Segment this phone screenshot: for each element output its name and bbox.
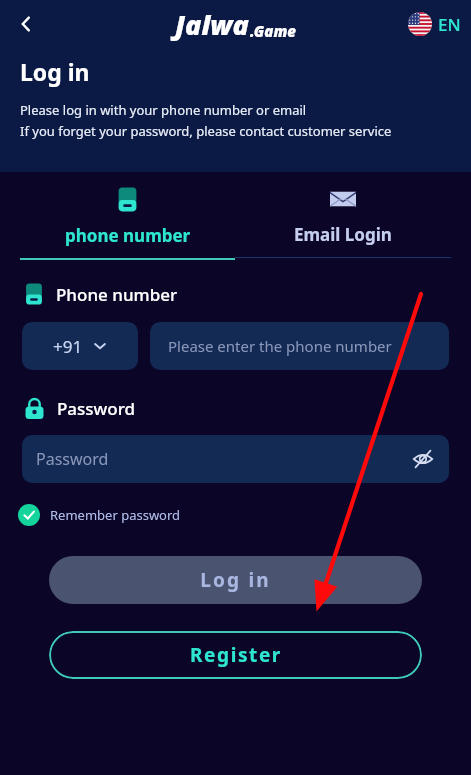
button[interactable]: Back	[6, 4, 46, 44]
staticText: +91	[53, 335, 83, 358]
button[interactable]: Password	[22, 435, 449, 483]
staticText: EN	[438, 13, 461, 36]
staticText: Log in	[200, 567, 271, 593]
staticText: .Game	[250, 21, 296, 41]
staticText: Email Login	[294, 223, 392, 246]
staticText: Phone number	[56, 283, 178, 306]
button[interactable]: EN	[408, 12, 461, 36]
staticText: If you forget your password, please cont…	[20, 122, 392, 140]
staticText: Please enter the phone number	[168, 336, 392, 356]
staticText: Please log in with your phone number or …	[20, 101, 307, 119]
staticText: phone number	[65, 224, 191, 247]
button[interactable]: Email Login	[235, 172, 451, 260]
staticText: Remember password	[50, 506, 181, 524]
button[interactable]: Show password	[405, 441, 441, 477]
button[interactable]: Log in	[49, 556, 422, 604]
button[interactable]: Remember password	[18, 502, 189, 528]
button[interactable]: phone number	[20, 172, 235, 260]
button[interactable]: Please enter the phone number	[150, 322, 449, 370]
staticText: Log in	[20, 56, 90, 87]
button[interactable]: +91	[22, 322, 138, 370]
button[interactable]: Register	[49, 631, 422, 679]
staticText: Password	[36, 448, 109, 470]
staticText: Jalwa	[175, 6, 249, 43]
staticText: Password	[57, 397, 136, 420]
staticText: Register	[190, 642, 282, 668]
